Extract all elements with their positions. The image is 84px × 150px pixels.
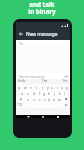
staticText: r [36,85,38,90]
button[interactable]: c [37,96,42,102]
staticText: . [58,103,59,107]
staticText: a [21,91,23,96]
button[interactable]: u [50,84,55,90]
staticText: u [51,85,54,90]
staticText: b [48,97,51,102]
staticText: h [48,91,51,96]
staticText: q [18,85,21,90]
button[interactable]: l [62,90,67,96]
staticText: i [57,85,58,90]
staticText: m [58,97,62,102]
button[interactable]: f [37,90,42,96]
staticText: Hello [18,79,26,83]
button[interactable]: t [40,84,45,90]
button[interactable]: g [42,90,47,96]
button[interactable]: s [25,90,31,96]
staticText: and talk in binary [0,0,84,16]
button[interactable]: a [19,90,25,96]
button[interactable]: Enter [61,102,70,108]
staticText: The [42,79,48,83]
staticText: n [53,97,56,102]
staticText: w [24,85,27,90]
staticText: x [33,97,35,102]
staticText: k [59,91,61,96]
staticText: Send message [19,74,45,79]
button[interactable]: m [57,96,62,102]
staticText: s [27,91,29,96]
button[interactable]: z [25,96,31,102]
button[interactable]: n [52,96,57,102]
button[interactable]: q [16,84,22,90]
button[interactable]: Shift [16,96,25,102]
button[interactable]: v [42,96,47,102]
button[interactable]: y [45,84,50,90]
button[interactable]: x [31,96,37,102]
button[interactable]: h [47,90,52,96]
button[interactable]: Back [26,115,30,118]
button[interactable]: i [55,84,60,90]
button[interactable]: Back [16,28,25,40]
button[interactable]: r [34,84,40,90]
staticText: New message [26,31,58,38]
button[interactable]: . [55,102,61,108]
staticText: v [44,97,46,102]
staticText: l [64,91,65,96]
staticText: To [19,41,24,46]
button[interactable]: b [47,96,52,102]
button[interactable]: e [28,84,34,90]
staticText: f [39,91,41,96]
staticText: c [39,97,41,102]
button[interactable]: j [52,90,57,96]
staticText: z [27,97,29,102]
button[interactable]: p [65,84,70,90]
staticText: d [33,91,36,96]
staticText: p [66,85,69,90]
button[interactable]: Home [41,115,45,118]
button[interactable]: Backspace [62,96,70,102]
staticText: t [42,85,44,90]
staticText: j [54,91,55,96]
button[interactable]: o [60,84,65,90]
staticText: g [43,91,46,96]
staticText: e [30,85,32,90]
button[interactable]: , [24,102,30,108]
button[interactable]: k [57,90,62,96]
staticText: o [61,85,64,90]
staticText: ?123 [17,103,23,107]
button[interactable]: ?123 [16,102,24,108]
staticText: I'm [63,79,68,83]
staticText: y [47,85,49,90]
button[interactable]: Recents [56,115,60,118]
staticText: , [27,103,28,107]
button[interactable]: Send [63,74,68,79]
button[interactable]: w [22,84,28,90]
button[interactable]: d [31,90,37,96]
